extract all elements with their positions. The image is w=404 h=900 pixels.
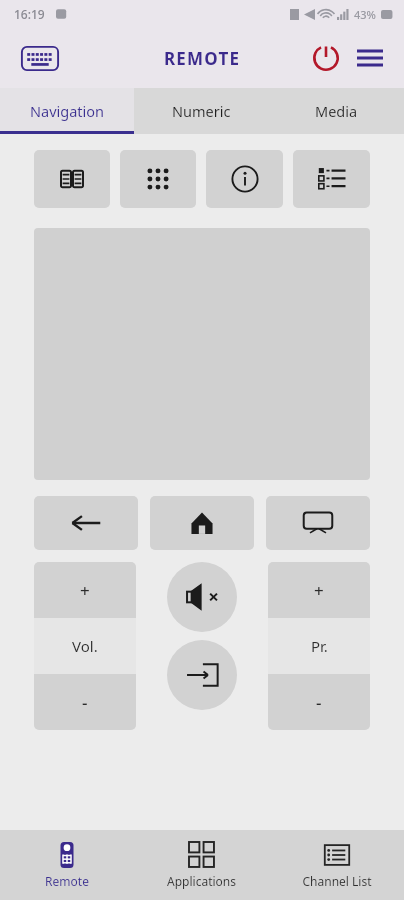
staticText: Media — [315, 101, 358, 121]
button[interactable]: Pr. up — [268, 562, 370, 618]
button[interactable]: Remote — [0, 830, 134, 900]
staticText: Navigation — [30, 101, 105, 121]
button[interactable]: Back — [34, 496, 138, 550]
staticText: Vol. — [72, 636, 98, 656]
button[interactable]: Pr. down — [268, 674, 370, 730]
button[interactable]: Applications — [134, 830, 269, 900]
staticText: REMOTE — [164, 47, 241, 70]
button[interactable]: Keyboard — [18, 43, 62, 73]
staticText: Pr. — [311, 636, 328, 656]
button[interactable]: Media — [269, 88, 404, 134]
staticText: - — [82, 691, 88, 714]
button[interactable]: Menu — [348, 36, 392, 80]
staticText: Numeric — [172, 101, 231, 121]
staticText: Channel List — [302, 873, 372, 889]
button[interactable]: Navigation — [0, 88, 134, 134]
staticText: 16:19 — [14, 6, 45, 22]
button[interactable]: Keypad — [120, 150, 196, 208]
button[interactable]: Source — [266, 496, 370, 550]
staticText: Remote — [45, 873, 89, 889]
button[interactable]: Vol. down — [34, 674, 136, 730]
button[interactable]: Home — [150, 496, 254, 550]
staticText: + — [314, 579, 324, 602]
button[interactable]: Guide — [34, 150, 110, 208]
button[interactable]: Input source — [167, 640, 237, 710]
button[interactable]: Info — [206, 150, 283, 208]
button[interactable]: List — [293, 150, 370, 208]
button[interactable]: Mute — [167, 562, 237, 632]
button[interactable]: Numeric — [134, 88, 269, 134]
button[interactable]: Power — [304, 36, 348, 80]
staticText: Applications — [167, 873, 236, 889]
button[interactable]: Channel List — [269, 830, 404, 900]
staticText: - — [316, 691, 322, 714]
staticText: 43% — [354, 7, 376, 22]
staticText: + — [80, 579, 90, 602]
button[interactable]: Vol. up — [34, 562, 136, 618]
